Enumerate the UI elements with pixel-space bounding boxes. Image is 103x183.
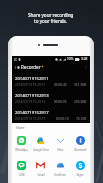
button[interactable]: Bluetooth bbox=[70, 136, 90, 152]
staticText: 00:00:05 bbox=[54, 100, 67, 104]
button[interactable]: WhatsApp bbox=[12, 136, 31, 152]
button[interactable]: Back bbox=[13, 65, 17, 69]
staticText: + bbox=[41, 64, 44, 70]
staticText: to your friends. bbox=[34, 18, 68, 24]
button[interactable]: LINE bbox=[12, 161, 31, 177]
staticText: Share bbox=[16, 126, 25, 130]
staticText: Recorder bbox=[21, 64, 41, 70]
staticText: 00:00:45 bbox=[54, 83, 67, 87]
staticText: 2014/07/19 15:29:11 bbox=[15, 83, 46, 87]
staticText: Skype bbox=[76, 173, 84, 177]
button[interactable]: Viber bbox=[50, 136, 70, 152]
button[interactable]: 20140719152911 bbox=[15, 72, 87, 89]
staticText: WhatsApp bbox=[15, 148, 28, 152]
staticText: LINE bbox=[19, 173, 25, 177]
staticText: 74.1KB bbox=[76, 117, 87, 121]
staticText: 2014/07/19 15:29:13 bbox=[15, 100, 46, 104]
button[interactable]: More options bbox=[83, 64, 89, 70]
staticText: 20140719152913 bbox=[15, 93, 49, 99]
staticText: Bluetooth bbox=[74, 148, 87, 152]
staticText: 00:00:10 bbox=[56, 117, 69, 121]
staticText: 351.3KB bbox=[74, 83, 87, 87]
button[interactable]: Google Drive bbox=[31, 136, 50, 152]
staticText: Gmail bbox=[37, 173, 45, 177]
button[interactable]: Gmail bbox=[31, 161, 50, 177]
staticText: 10% bbox=[67, 57, 74, 61]
staticText: 20140719152917 bbox=[15, 110, 49, 116]
staticText: OneDrive bbox=[54, 173, 66, 177]
staticText: Viber bbox=[57, 148, 64, 152]
staticText: Google Drive bbox=[33, 148, 49, 152]
button[interactable]: Skype bbox=[70, 161, 90, 177]
button[interactable]: 20140719152913 bbox=[15, 89, 87, 106]
staticText: 2014/07/19 15:29:17 bbox=[15, 117, 46, 121]
button[interactable]: 20140719152917 bbox=[15, 106, 87, 123]
staticText: Share your recording bbox=[28, 12, 74, 18]
staticText: 3:28 bbox=[81, 57, 88, 61]
staticText: 205.3KB bbox=[74, 100, 87, 104]
staticText: 20140719152911 bbox=[15, 76, 49, 82]
button[interactable]: OneDrive bbox=[50, 161, 70, 177]
